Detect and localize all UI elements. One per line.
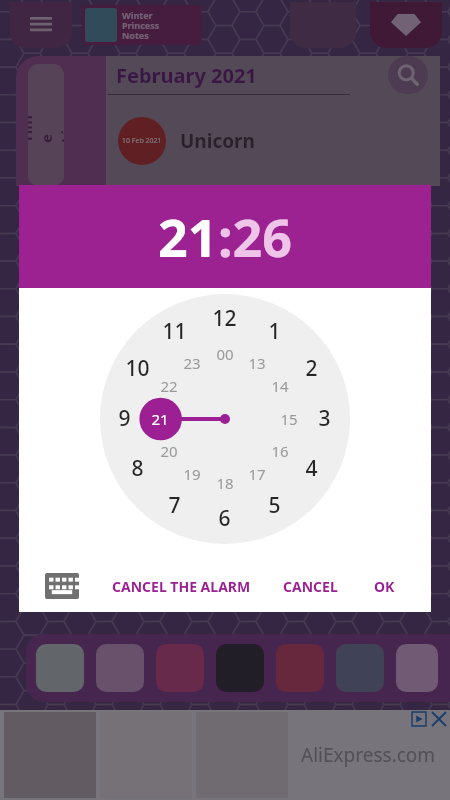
button[interactable]: App [96,644,144,692]
button[interactable]: OK [370,571,399,602]
staticText: 21 [151,409,169,429]
staticText: CANCEL [283,577,338,596]
button[interactable]: Gems [370,2,442,48]
staticText: 9 [118,404,131,433]
button[interactable]: App [156,644,204,692]
staticText: 23 [183,353,201,373]
staticText: 3 [318,404,331,433]
staticText: 00 [216,344,234,364]
staticText: 2 [305,354,318,383]
staticText: 4 [305,454,318,483]
staticText: OK [374,577,395,596]
button[interactable]: CANCEL THE ALARM [108,571,255,602]
staticText: 11 [162,317,187,346]
button[interactable]: CANCEL [279,571,342,602]
staticText: 5 [268,491,281,520]
button[interactable]: Clock face, hour 21 [100,294,350,544]
staticText: AliExpress.com [301,742,436,768]
staticText: Time Line [28,107,64,143]
staticText: CANCEL THE ALARM [112,577,251,596]
staticText: 8 [131,454,144,483]
staticText: 12 [212,304,237,333]
staticText: 6 [218,504,231,533]
staticText: 10 Feb 2021 [122,136,162,146]
staticText: :26 [218,201,293,272]
staticText: 1 [268,317,281,346]
staticText: February 2021 [116,62,257,89]
button[interactable]: App [36,644,84,692]
staticText: 15 [280,409,298,429]
staticText: 14 [271,376,289,396]
staticText: 13 [248,353,266,373]
staticText: 18 [216,473,234,493]
button[interactable]: 21 [19,185,431,288]
button[interactable]: Menu [10,2,72,48]
staticText: 22 [160,376,178,396]
button[interactable]: App [396,644,438,692]
staticText: 19 [183,464,201,484]
button[interactable]: Winter Princess Notes [82,5,202,45]
staticText: 16 [271,441,289,461]
button[interactable]: 10 Feb 2021 [106,95,440,186]
button[interactable]: App [216,644,264,692]
button[interactable]: App [276,644,324,692]
button[interactable]: App [336,644,384,692]
staticText: Unicorn [180,128,255,154]
staticText: 20 [160,441,178,461]
button[interactable]: Time Line [28,64,64,186]
staticText: 17 [248,464,266,484]
staticText: Winter Princess Notes [122,9,160,41]
staticText: 21 [158,201,218,272]
button[interactable]: Close ad [432,712,446,726]
staticText: 7 [168,491,181,520]
button[interactable]: Search [388,56,428,94]
staticText: 10 [125,354,150,383]
button[interactable]: Switch to keyboard input [45,573,79,599]
